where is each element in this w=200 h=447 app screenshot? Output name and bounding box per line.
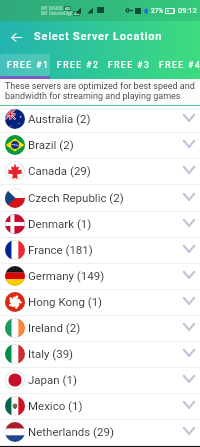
button[interactable]: FREE #3 xyxy=(104,54,154,76)
other: Expand xyxy=(183,193,195,201)
button[interactable]: France (181) xyxy=(0,238,200,264)
staticText: Ireland (2) xyxy=(28,321,81,334)
button[interactable]: FREE #2 xyxy=(53,54,103,76)
staticText: FREE #2 xyxy=(57,60,100,70)
button[interactable]: Italy (39) xyxy=(0,342,200,368)
button[interactable]: Denmark (1) xyxy=(0,212,200,238)
staticText: Czech Republic (2) xyxy=(28,191,124,204)
other: Bluetooth xyxy=(143,8,149,14)
button[interactable]: Mexico (1) xyxy=(0,394,200,420)
staticText: 27% xyxy=(151,7,164,15)
staticText: MY MAXIS xyxy=(41,6,63,11)
button[interactable]: FREE #1 xyxy=(3,54,53,76)
button[interactable]: Brazil (2) xyxy=(0,133,200,159)
staticText: 4G xyxy=(65,6,70,11)
staticText: Hong Kong (1) xyxy=(28,295,103,308)
other: Expand xyxy=(183,140,195,148)
button[interactable]: Canada (29) xyxy=(0,159,200,185)
button[interactable]: Ireland (2) xyxy=(0,316,200,342)
staticText: Germany (149) xyxy=(28,269,105,282)
button[interactable]: Hong Kong (1) xyxy=(0,290,200,316)
other: Expand xyxy=(183,271,195,279)
staticText: FREE #1 xyxy=(7,60,50,70)
other: Expand xyxy=(183,166,195,174)
other: Expand xyxy=(183,401,195,409)
staticText: France (181) xyxy=(28,243,93,256)
other: Expand xyxy=(183,245,195,253)
other: Battery xyxy=(165,8,175,14)
staticText: MY CelcomDigi xyxy=(41,11,72,16)
other: Expand xyxy=(183,427,195,435)
staticText: Denmark (1) xyxy=(28,217,92,230)
button[interactable]: Back xyxy=(3,24,29,50)
staticText: Select Server Location xyxy=(34,30,163,43)
staticText: Australia (2) xyxy=(28,112,91,125)
other: Expand xyxy=(183,114,195,122)
other: Expand xyxy=(183,323,195,331)
other: Expand xyxy=(183,349,195,357)
other: Expand xyxy=(183,297,195,305)
staticText: Canada (29) xyxy=(28,164,91,177)
staticText: Brazil (2) xyxy=(28,138,74,151)
button[interactable]: Netherlands (29) xyxy=(0,420,200,446)
other: Expand xyxy=(183,375,195,383)
staticText: 09:12 xyxy=(178,6,197,15)
staticText: 4G xyxy=(74,11,79,16)
button[interactable]: Germany (149) xyxy=(0,264,200,290)
other: VPN xyxy=(126,7,133,14)
button[interactable]: Japan (1) xyxy=(0,368,200,394)
staticText: Mexico (1) xyxy=(28,399,83,412)
button[interactable]: FREE #4 xyxy=(155,54,200,76)
staticText: Italy (39) xyxy=(28,347,74,360)
other: Expand xyxy=(183,219,195,227)
staticText: FREE #4 xyxy=(159,60,200,70)
staticText: Netherlands (29) xyxy=(28,425,114,438)
button[interactable]: Czech Republic (2) xyxy=(0,186,200,212)
staticText: These servers are optimized for best spe… xyxy=(5,81,198,101)
staticText: FREE #3 xyxy=(108,60,151,70)
button[interactable]: Australia (2) xyxy=(0,107,200,133)
staticText: Japan (1) xyxy=(28,373,77,386)
